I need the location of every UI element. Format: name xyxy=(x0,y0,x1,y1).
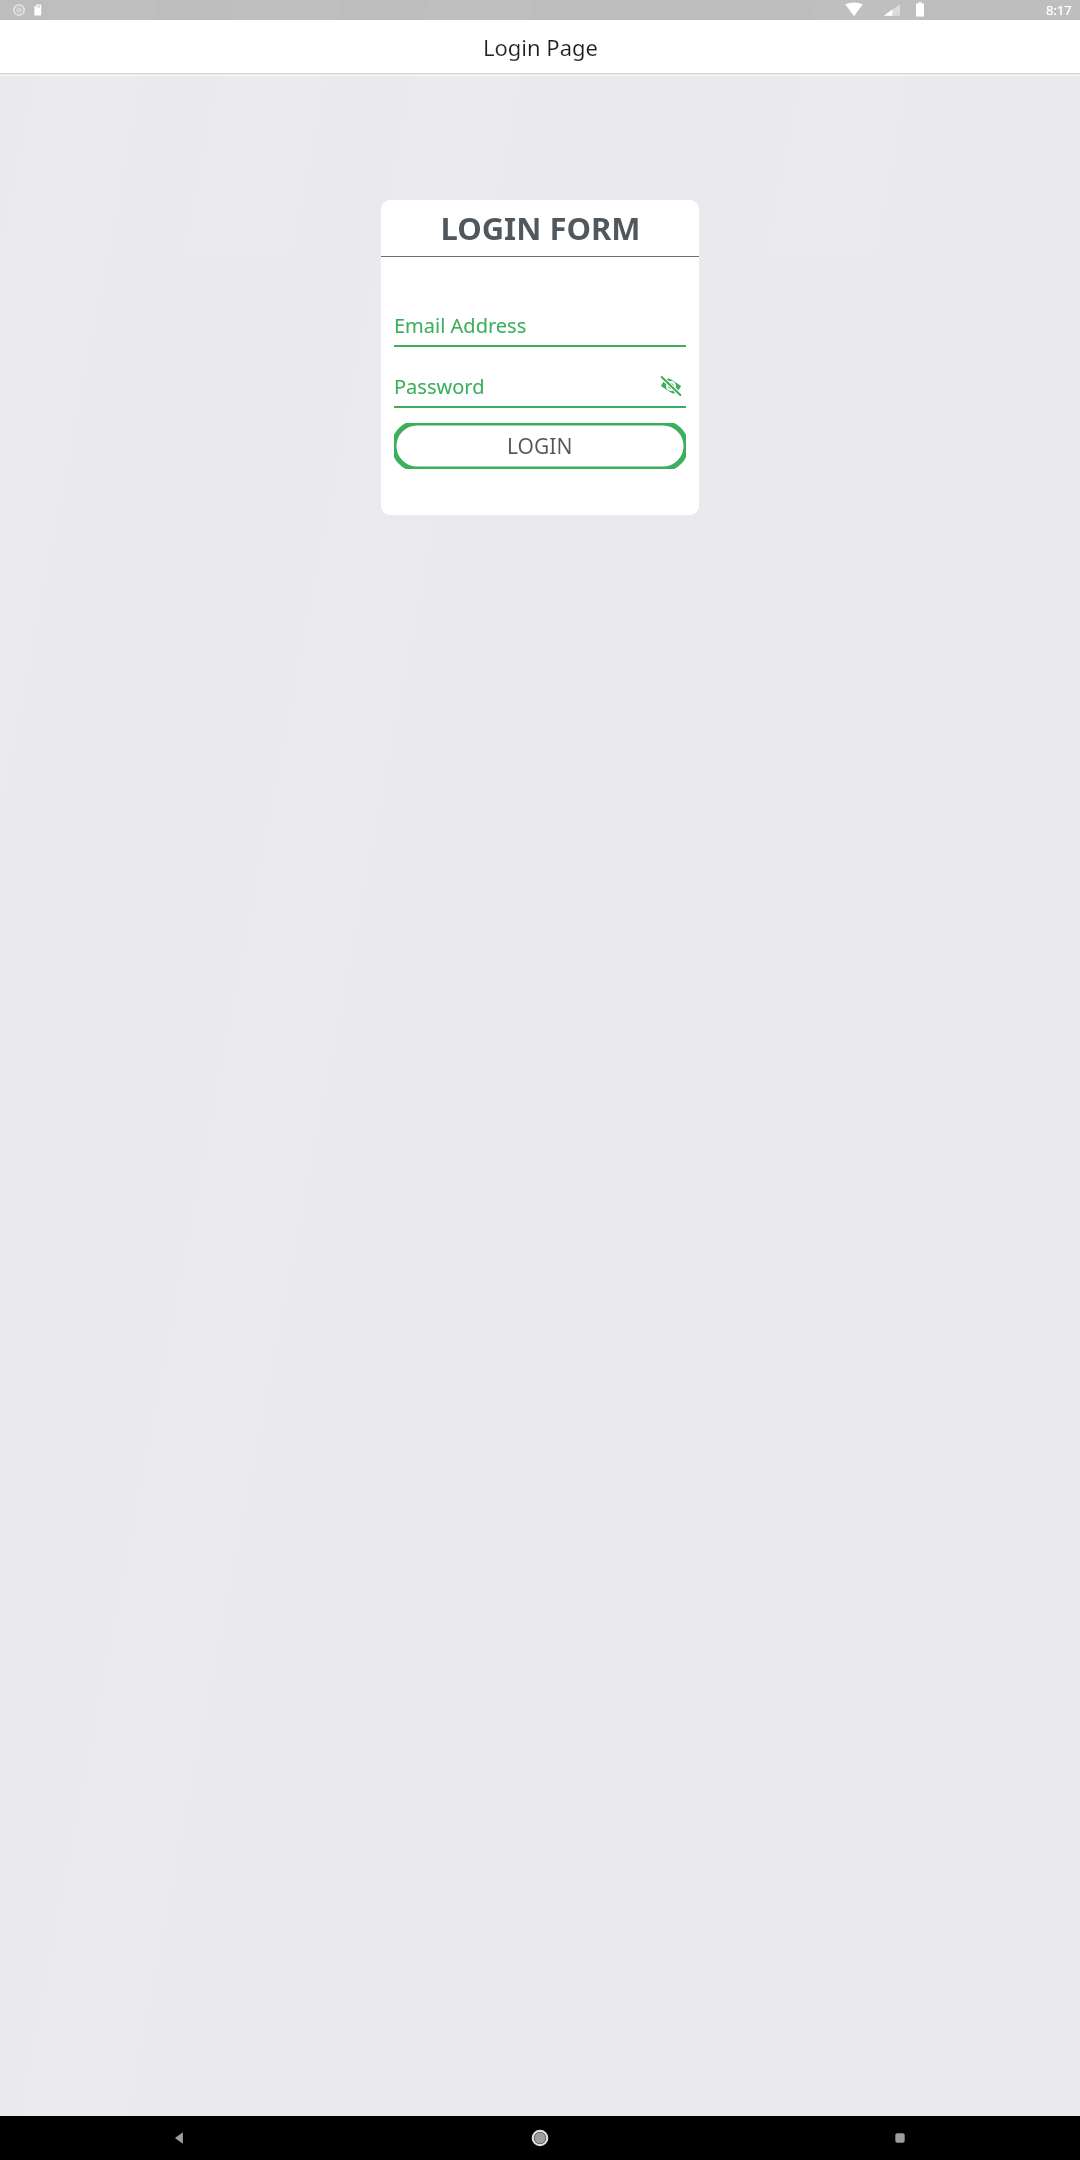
button[interactable]: Home xyxy=(360,2116,720,2160)
staticText: Password xyxy=(394,373,656,400)
staticText: Email Address xyxy=(394,312,527,339)
staticText: LOGIN FORM xyxy=(440,207,641,249)
staticText: 8:17 xyxy=(1046,1,1072,19)
button[interactable]: Email Address xyxy=(394,305,686,345)
button[interactable]: Show password xyxy=(656,371,686,401)
staticText: LOGIN xyxy=(507,432,573,461)
button[interactable]: LOGIN xyxy=(394,423,686,469)
staticText: Login Page xyxy=(483,32,598,62)
button[interactable]: Back xyxy=(0,2116,360,2160)
button[interactable]: Recent apps xyxy=(720,2116,1080,2160)
button[interactable]: Password xyxy=(394,366,686,406)
